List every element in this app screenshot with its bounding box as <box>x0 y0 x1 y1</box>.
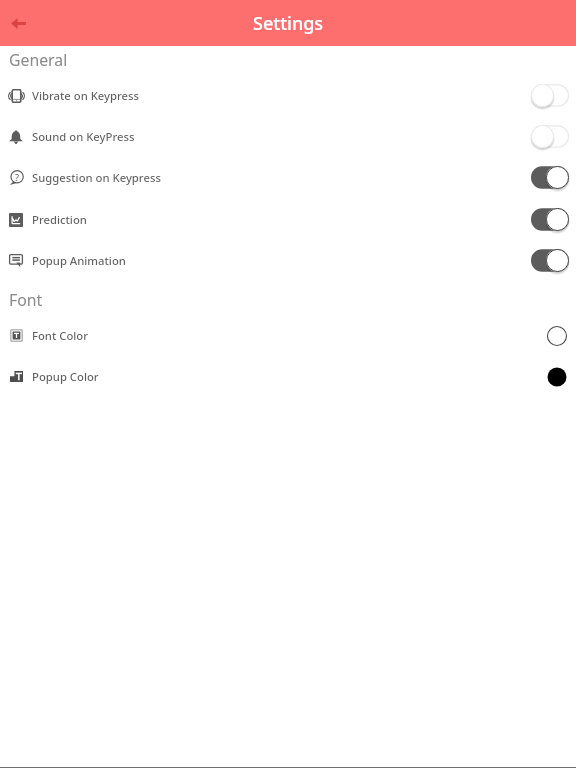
button[interactable]: On <box>531 208 569 231</box>
button[interactable]: Sound on KeyPress <box>0 116 576 157</box>
button[interactable]: Popup Color <box>546 366 568 388</box>
staticText: General <box>9 49 68 71</box>
button[interactable]: Off <box>531 125 569 148</box>
button[interactable]: Font Color <box>0 315 576 356</box>
staticText: Suggestion on Keypress <box>32 170 161 185</box>
button[interactable]: Font Color <box>546 325 568 347</box>
button[interactable]: Vibrate on Keypress <box>0 75 576 116</box>
button[interactable]: Popup Animation <box>0 240 576 281</box>
button[interactable]: On <box>531 166 569 189</box>
staticText: Settings <box>253 11 324 36</box>
button[interactable]: Popup Color <box>0 356 576 397</box>
staticText: Sound on KeyPress <box>32 129 135 144</box>
staticText: Font Color <box>32 328 89 343</box>
staticText: Font <box>9 289 43 311</box>
button[interactable]: ? <box>0 157 576 198</box>
button[interactable]: Prediction <box>0 199 576 240</box>
staticText: Popup Animation <box>32 253 126 268</box>
button[interactable]: On <box>531 249 569 272</box>
staticText: Popup Color <box>32 369 99 384</box>
staticText: ? <box>15 171 20 183</box>
staticText: Prediction <box>32 212 87 227</box>
button[interactable]: Back <box>0 5 36 41</box>
staticText: Vibrate on Keypress <box>32 88 140 103</box>
button[interactable]: Off <box>531 84 569 107</box>
